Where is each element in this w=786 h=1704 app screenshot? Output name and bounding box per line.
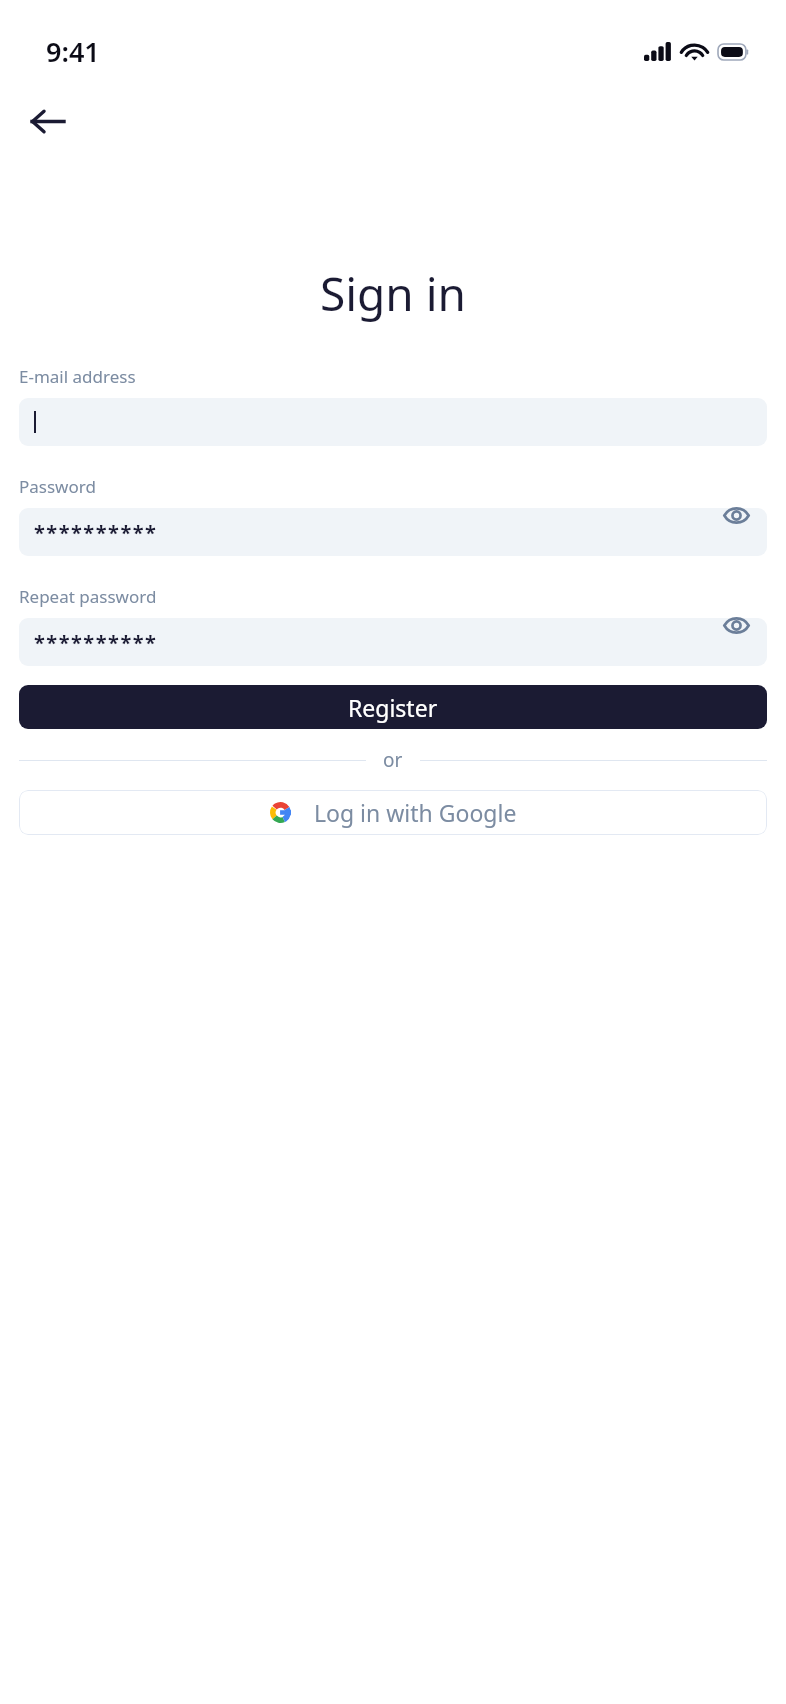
staticText: Register [348,692,438,723]
staticText: ********** [34,629,158,656]
staticText: E-mail address [19,365,136,388]
button[interactable]: ********** [19,508,767,556]
staticText: 9:41 [46,33,100,70]
button[interactable]: Show password [719,608,753,642]
staticText: or [383,747,403,773]
button[interactable]: Log in with Google [19,790,767,835]
button[interactable]: Show password [719,498,753,532]
staticText: Password [19,475,96,498]
staticText: Log in with Google [314,797,517,828]
staticText: Repeat password [19,585,157,608]
staticText: ********** [34,519,158,546]
button[interactable]: Register [19,685,767,729]
button[interactable]: ********** [19,618,767,666]
button[interactable]: Back [18,92,76,150]
staticText: Sign in [0,262,786,325]
button[interactable] [19,398,767,446]
